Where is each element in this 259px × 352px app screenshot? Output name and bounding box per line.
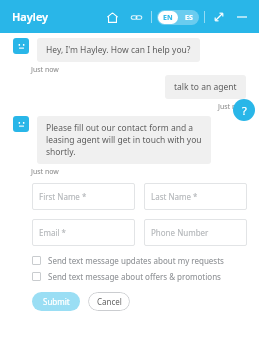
button[interactable]: Home [102, 7, 122, 27]
button[interactable]: Submit [32, 292, 80, 311]
staticText: Last Name * [151, 191, 198, 202]
staticText: Hayley [12, 9, 49, 24]
staticText: Phone Number [151, 227, 209, 238]
staticText: talk to an agent [174, 81, 237, 93]
staticText: Send text message about offers & promoti… [48, 271, 221, 282]
staticText: Please fill out our contact form and a l… [46, 122, 202, 158]
staticText: Cancel [97, 296, 122, 307]
staticText: Submit [43, 296, 70, 307]
button[interactable]: First Name * [32, 183, 135, 210]
button[interactable]: Phone Number [144, 219, 247, 246]
button[interactable]: Minimize [233, 8, 251, 26]
staticText: EN [163, 13, 173, 23]
staticText: Just now [218, 102, 246, 112]
staticText: Just now [31, 65, 59, 75]
button[interactable]: Email * [32, 219, 135, 246]
button[interactable]: Help [233, 99, 255, 121]
staticText: Hey, I'm Hayley. How can I help you? [46, 44, 191, 56]
staticText: Just now [31, 167, 59, 177]
button[interactable]: Last Name * [144, 183, 247, 210]
staticText: ? [242, 103, 247, 118]
staticText: First Name * [39, 191, 87, 202]
button[interactable]: Expand [210, 8, 228, 26]
button[interactable]: Copy link [126, 7, 146, 27]
staticText: Email * [39, 227, 67, 238]
button[interactable]: EN [157, 10, 199, 25]
staticText: ES [185, 13, 193, 23]
staticText: Send text message updates about my reque… [48, 255, 224, 266]
button[interactable]: Cancel [88, 292, 130, 311]
button[interactable]: Send text message about offers & promoti… [32, 271, 247, 282]
button[interactable]: Send text message updates about my reque… [32, 255, 247, 266]
